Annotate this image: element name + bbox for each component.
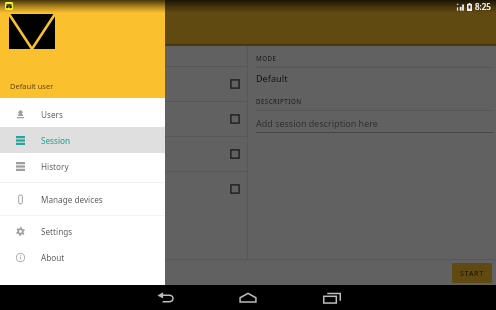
- staticText: START: [460, 268, 484, 278]
- staticText: 8:25: [475, 1, 491, 12]
- button[interactable]: Settings: [0, 218, 165, 244]
- button[interactable]: Recent apps: [312, 285, 352, 310]
- button[interactable]: START: [452, 263, 492, 283]
- button[interactable]: About: [0, 244, 165, 270]
- button[interactable]: Select item: [230, 184, 241, 195]
- staticText: History: [41, 161, 69, 172]
- staticText: Users: [41, 109, 63, 120]
- staticText: Add session description here: [256, 117, 378, 129]
- button[interactable]: Back: [145, 285, 185, 310]
- button[interactable]: Select item: [230, 114, 241, 125]
- staticText: MODE: [256, 54, 277, 62]
- staticText: Default user: [10, 81, 54, 91]
- button[interactable]: Manage devices: [0, 186, 165, 212]
- staticText: DESCRIPTION: [256, 97, 302, 105]
- button[interactable]: History: [0, 153, 165, 179]
- staticText: Settings: [41, 226, 73, 237]
- staticText: Default: [256, 72, 288, 84]
- button[interactable]: Session: [0, 127, 165, 153]
- button[interactable]: Select item: [230, 149, 241, 160]
- staticText: Session: [41, 135, 71, 146]
- button[interactable]: Users: [0, 101, 165, 127]
- button[interactable]: Home: [228, 285, 268, 310]
- button[interactable]: Select item: [230, 79, 241, 90]
- staticText: Manage devices: [41, 194, 103, 205]
- staticText: About: [41, 252, 65, 263]
